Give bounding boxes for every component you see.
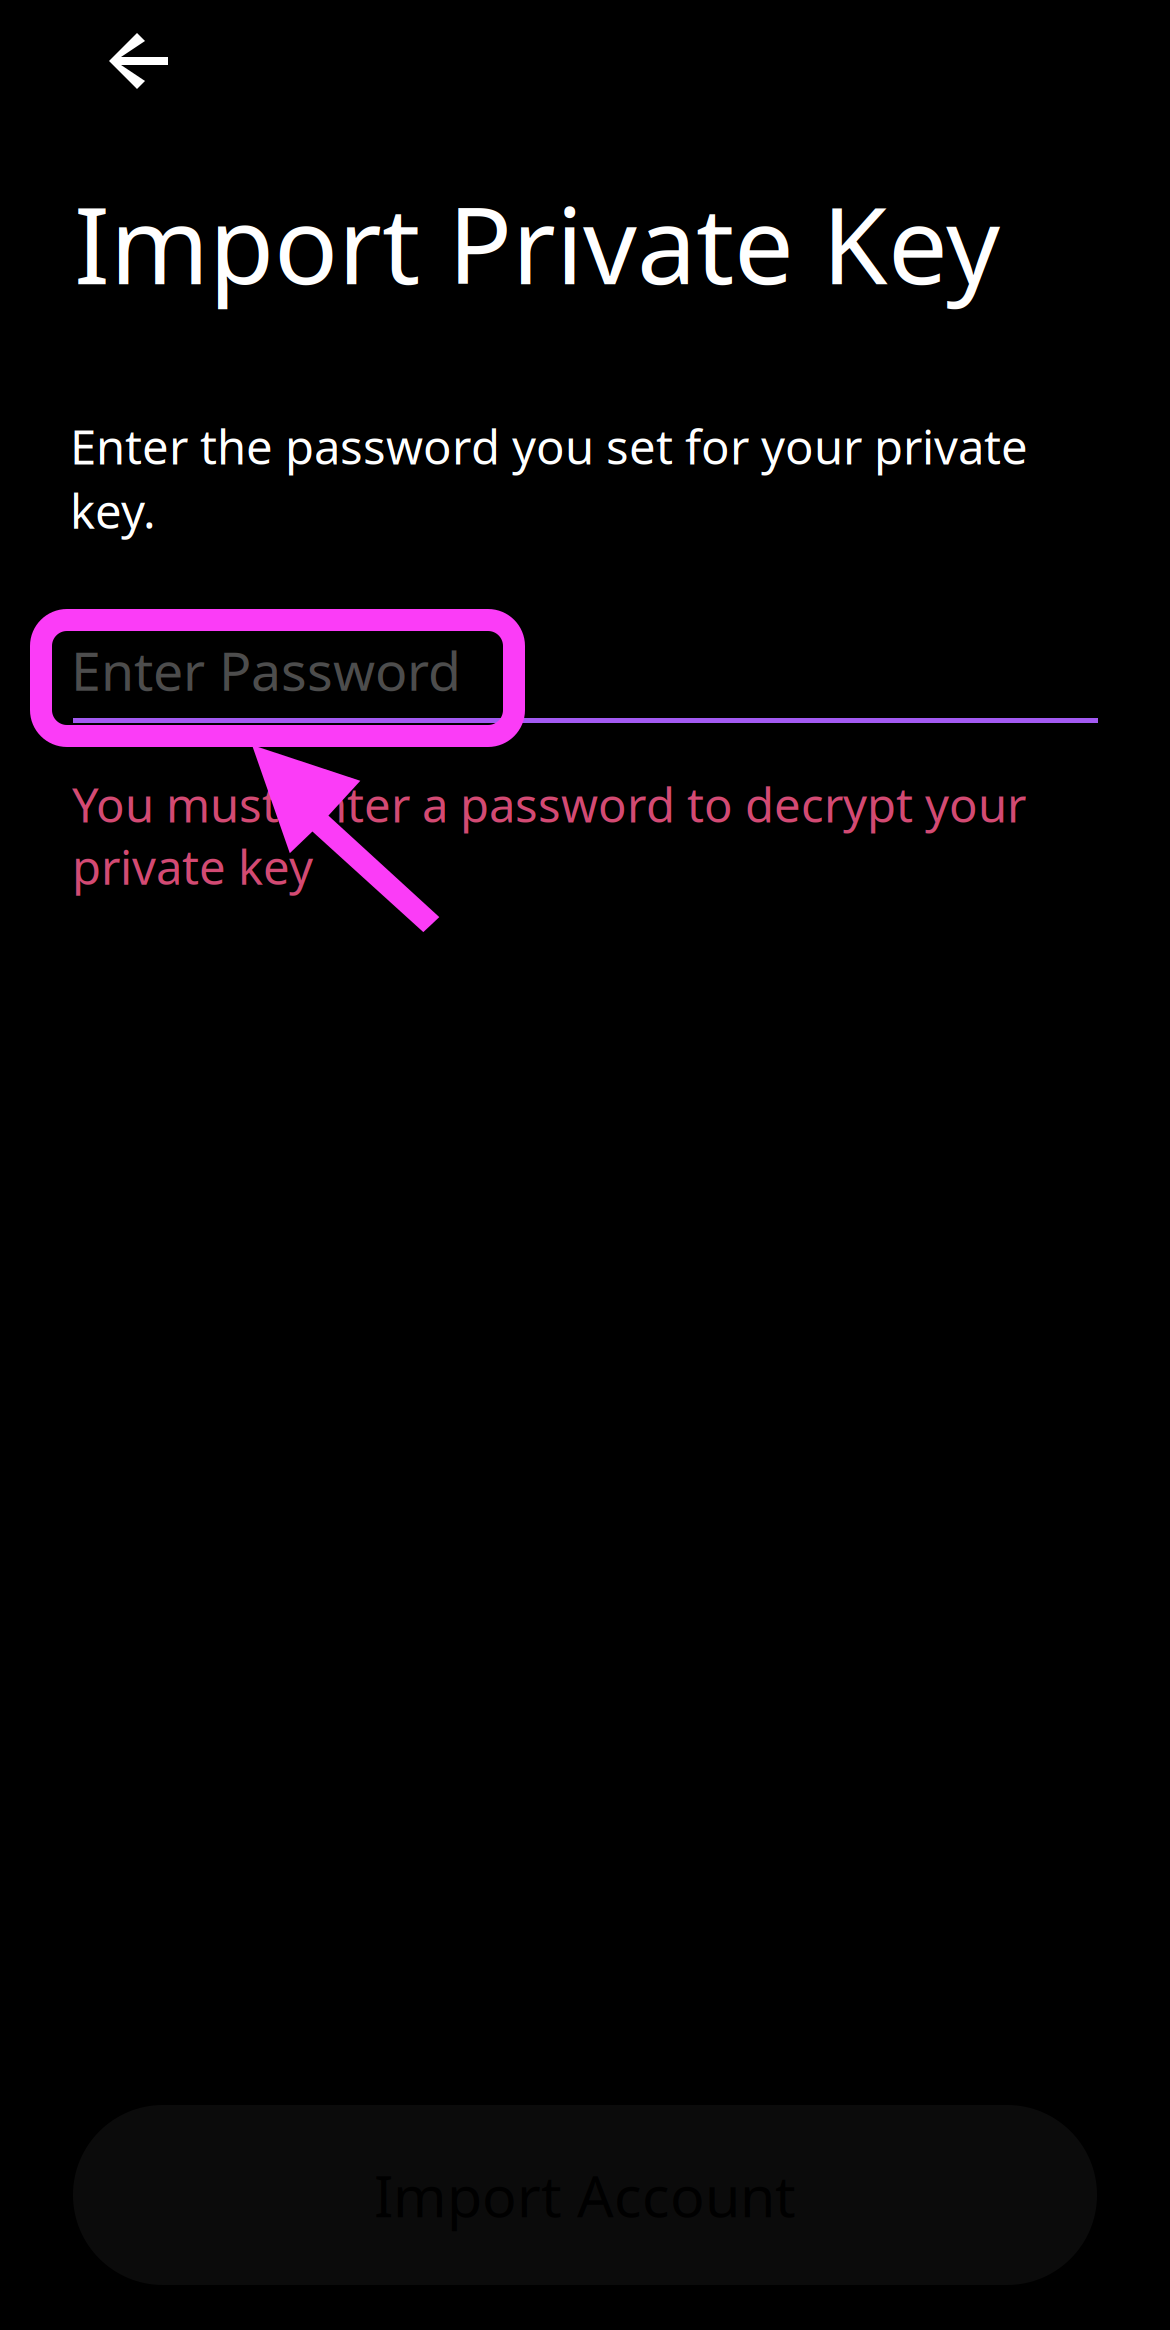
staticText: You must enter a password to decrypt you… <box>72 772 1026 899</box>
button[interactable]: Enter Password <box>73 634 1098 723</box>
staticText: Import Private Key <box>74 171 1000 315</box>
staticText: Import Account <box>374 2156 796 2234</box>
staticText: Enter Password <box>71 633 461 706</box>
staticText: Enter the password you set for your priv… <box>70 414 1028 543</box>
button[interactable]: Back <box>69 0 208 122</box>
